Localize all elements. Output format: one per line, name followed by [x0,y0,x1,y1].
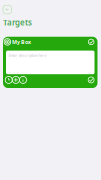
button[interactable]: Add [12,76,19,83]
staticText: Enter description here [8,53,46,58]
button[interactable]: Mark complete [88,39,94,45]
button[interactable]: History [5,76,12,83]
staticText: Targets [3,17,32,28]
staticText: My Box [12,38,31,45]
button[interactable]: Back [3,5,12,14]
button[interactable]: Done [88,77,94,83]
button[interactable]: Info [19,76,26,83]
